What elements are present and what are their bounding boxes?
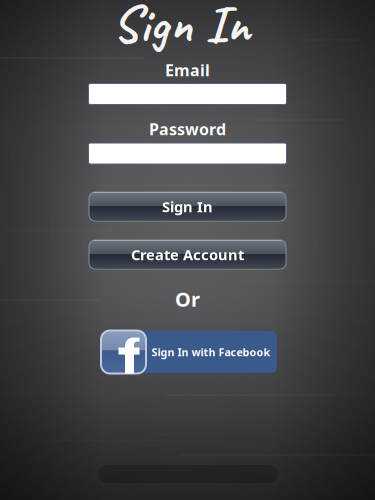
staticText: Sign In (112, 0, 250, 57)
button[interactable]: Create Account (89, 240, 286, 269)
button[interactable]: Sign In (89, 192, 286, 221)
staticText: Email (165, 59, 210, 81)
button[interactable]: Sign In with Facebook (101, 331, 277, 373)
staticText: Create Account (131, 245, 244, 264)
staticText: Password (149, 118, 226, 140)
staticText: Or (175, 286, 200, 312)
staticText: Sign In with Facebook (151, 345, 270, 359)
staticText: Sign In (162, 197, 213, 216)
